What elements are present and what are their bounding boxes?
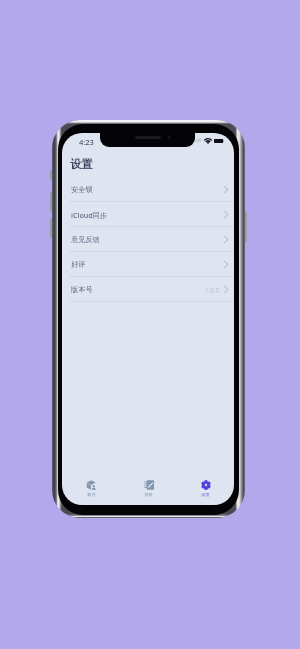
staticText: 版本号 [71,285,93,294]
staticText: 安全锁 [71,185,93,194]
button[interactable]: 好评 [62,252,234,277]
button[interactable]: 意见反馈 [62,227,234,252]
staticText: 设置 [201,492,210,497]
staticText: iCloud同步 [71,210,108,220]
button[interactable]: iCloud同步 [62,202,234,227]
button[interactable]: 安全锁 [62,177,234,202]
button[interactable]: 资料 [120,479,177,497]
button[interactable]: 设置 [177,479,234,497]
button[interactable]: 版本号 [62,277,234,302]
staticText: 账号 [87,492,96,497]
staticText: 意见反馈 [71,235,100,244]
staticText: 设置 [70,157,93,171]
staticText: 资料 [144,492,153,497]
staticText: 1.0.0 [205,286,219,294]
staticText: 4:23 [79,137,94,147]
staticText: 好评 [71,260,86,269]
button[interactable]: 账号 [62,479,120,497]
